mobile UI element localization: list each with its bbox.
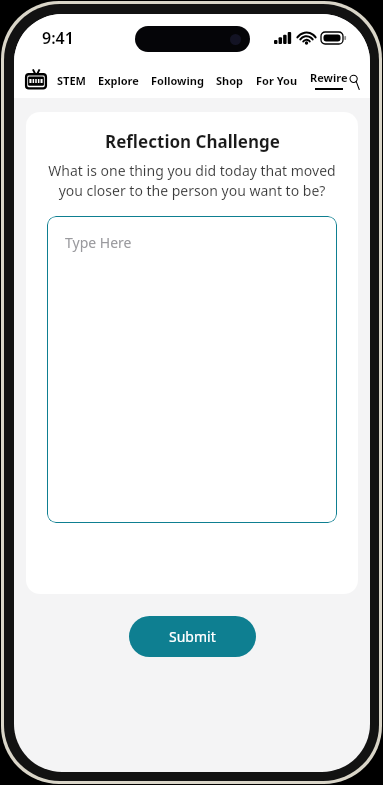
staticText: Submit (169, 627, 216, 646)
staticText: What is one thing you did today that mov… (42, 161, 342, 200)
staticText: Shop (216, 73, 244, 88)
button[interactable]: STEM (56, 71, 87, 90)
staticText: 9:41 (42, 27, 74, 49)
button[interactable]: Search (349, 67, 360, 93)
button[interactable]: Shop (215, 71, 245, 90)
button[interactable]: Type Here (47, 216, 337, 523)
staticText: Reflection Challenge (105, 130, 280, 153)
staticText: For You (256, 73, 298, 88)
button[interactable]: Live (23, 67, 49, 93)
staticText: Explore (98, 73, 139, 88)
button[interactable]: For You (255, 71, 299, 90)
button[interactable]: Explore (97, 71, 140, 90)
button[interactable]: Following (150, 71, 205, 90)
staticText: STEM (57, 73, 86, 88)
button[interactable]: Rewire (309, 68, 349, 92)
staticText: Type Here (65, 233, 132, 252)
staticText: Following (151, 73, 204, 88)
staticText: Rewire (310, 70, 348, 85)
button[interactable]: Submit (129, 616, 256, 657)
